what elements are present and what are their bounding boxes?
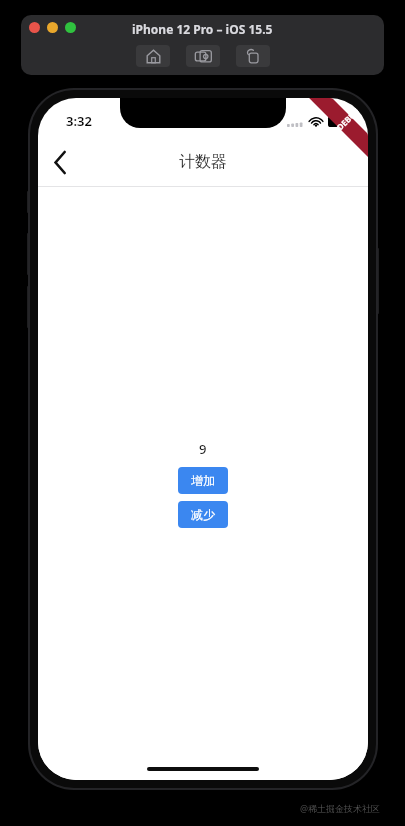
other: Screenshot [195,48,212,65]
button[interactable]: 增加 [178,467,228,494]
staticText: 减少 [191,507,215,522]
button[interactable]: Home [136,45,170,67]
staticText: iPhone 12 Pro – iOS 15.5 [132,21,273,37]
button[interactable]: 减少 [178,501,228,528]
button[interactable] [65,22,76,33]
other: Rotate [246,49,261,64]
staticText: 计数器 [179,152,227,172]
button[interactable]: Screenshot [186,45,220,67]
staticText: DEBUG [334,105,362,132]
button[interactable] [29,22,40,33]
button[interactable]: Rotate [236,45,270,67]
other: Home [146,49,161,64]
staticText: 增加 [191,473,215,488]
button[interactable]: Back [38,140,82,184]
staticText: 3:32 [66,112,92,130]
button[interactable] [47,22,58,33]
staticText: 9 [199,440,207,458]
staticText: @稀土掘金技术社区 [300,802,381,814]
